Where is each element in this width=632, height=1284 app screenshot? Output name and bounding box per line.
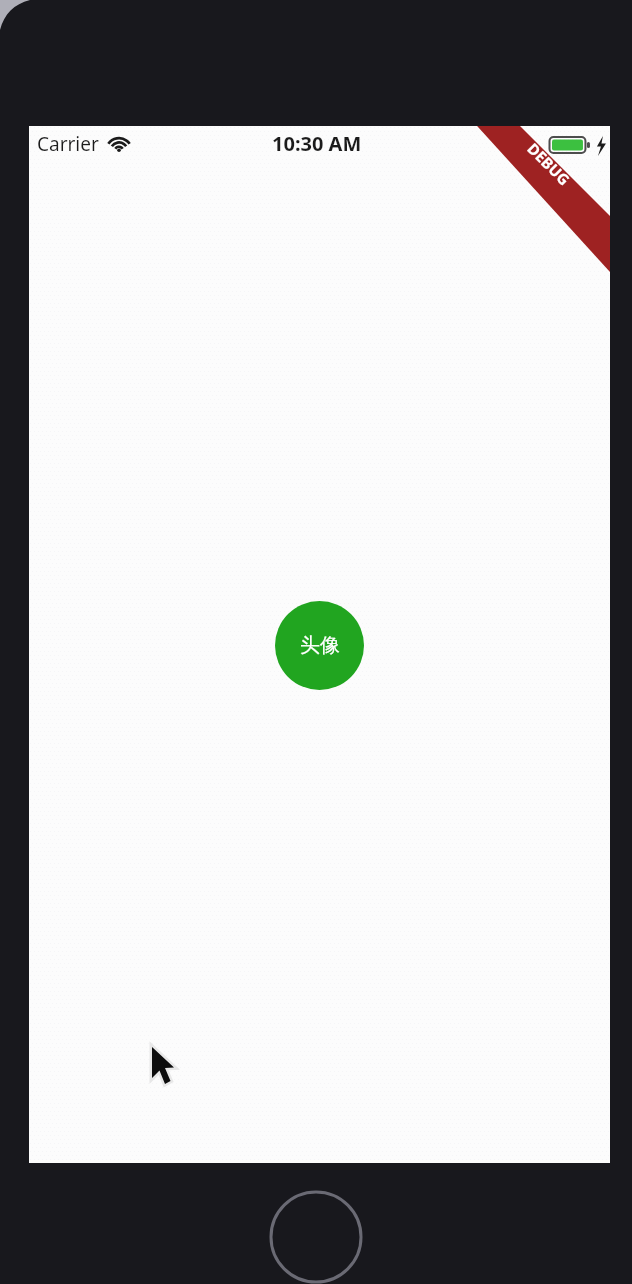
staticText: 10:30 AM [272, 130, 362, 157]
staticText: 头像 [300, 633, 340, 658]
staticText: Carrier [37, 131, 99, 157]
other: Wi-Fi signal [106, 134, 132, 154]
staticText: DEBUG [523, 138, 574, 189]
button[interactable]: 头像 [275, 601, 364, 690]
other: Battery charging [549, 135, 607, 155]
